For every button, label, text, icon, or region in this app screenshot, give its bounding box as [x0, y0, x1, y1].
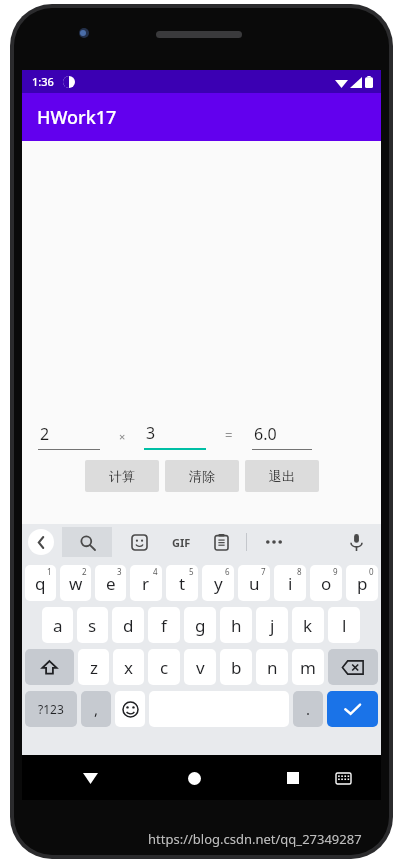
button[interactable]: . — [293, 691, 323, 727]
button[interactable]: 3 — [144, 422, 206, 450]
button[interactable]: Voice input — [343, 529, 369, 555]
staticText: × — [119, 429, 126, 444]
staticText: https://blog.csdn.net/qq_27349287 — [148, 830, 362, 848]
staticText: k — [303, 614, 313, 637]
button[interactable]: Enter — [327, 691, 378, 727]
button[interactable]: Back — [75, 763, 105, 793]
button[interactable]: Search — [62, 527, 112, 557]
button[interactable]: s — [77, 607, 108, 643]
staticText: c — [160, 656, 169, 679]
staticText: v — [196, 656, 205, 679]
button[interactable]: Backspace — [328, 649, 378, 685]
staticText: 退出 — [269, 468, 295, 484]
staticText: 9 — [333, 566, 338, 577]
staticText: j — [270, 614, 275, 637]
button[interactable]: z — [78, 649, 109, 685]
button[interactable]: f — [148, 607, 180, 643]
button[interactable]: ?123 — [25, 691, 77, 727]
staticText: q — [35, 572, 46, 595]
button[interactable]: h — [220, 607, 252, 643]
button[interactable]: n — [256, 649, 288, 685]
staticText: r — [142, 572, 150, 595]
staticText: z — [90, 656, 98, 679]
staticText: i — [288, 572, 293, 595]
staticText: m — [300, 656, 316, 679]
staticText: 1 — [47, 566, 52, 577]
staticText: u — [249, 572, 260, 595]
staticText: ?123 — [38, 701, 64, 717]
staticText: 0 — [369, 566, 374, 577]
button[interactable]: a — [42, 607, 73, 643]
staticText: 2 — [82, 566, 87, 577]
staticText: l — [342, 614, 347, 637]
button[interactable]: g — [184, 607, 216, 643]
button[interactable]: c — [148, 649, 180, 685]
staticText: 3 — [146, 422, 156, 444]
staticText: h — [231, 614, 242, 637]
button[interactable]: 6.0 — [252, 423, 312, 450]
button[interactable]: 退出 — [245, 460, 319, 492]
staticText: 1:36 — [32, 74, 54, 89]
button[interactable]: y — [202, 565, 234, 601]
button[interactable]: GIF — [166, 529, 196, 555]
button[interactable]: q — [25, 565, 56, 601]
staticText: = — [225, 426, 233, 444]
button[interactable]: t — [166, 565, 198, 601]
staticText: 2 — [40, 423, 50, 445]
button[interactable]: u — [238, 565, 270, 601]
button[interactable]: i — [274, 565, 306, 601]
button[interactable]: d — [112, 607, 144, 643]
button[interactable]: j — [256, 607, 288, 643]
button[interactable]: 清除 — [165, 460, 239, 492]
staticText: a — [53, 614, 63, 637]
button[interactable]: 计算 — [85, 460, 159, 492]
button[interactable]: Shift — [25, 649, 74, 685]
staticText: 3 — [117, 566, 122, 577]
button[interactable]: Recent apps — [278, 763, 308, 793]
button[interactable]: e — [95, 565, 126, 601]
staticText: t — [179, 572, 186, 595]
button[interactable]: r — [130, 565, 162, 601]
button[interactable]: Home — [179, 763, 209, 793]
staticText: . — [306, 699, 311, 719]
button[interactable]: More options — [261, 529, 287, 555]
staticText: 6.0 — [254, 423, 277, 445]
button[interactable]: l — [328, 607, 360, 643]
staticText: GIF — [172, 535, 191, 550]
staticText: p — [357, 572, 368, 595]
staticText: g — [195, 614, 206, 637]
button[interactable]: p — [346, 565, 378, 601]
staticText: 计算 — [109, 468, 135, 484]
staticText: 7 — [261, 566, 266, 577]
staticText: n — [267, 656, 278, 679]
staticText: , — [94, 699, 99, 719]
button[interactable]: k — [292, 607, 324, 643]
button[interactable]: Stickers — [126, 529, 152, 555]
button[interactable]: , — [81, 691, 111, 727]
button[interactable]: Back — [28, 529, 54, 555]
button[interactable]: Switch keyboard — [330, 765, 356, 791]
button[interactable]: v — [184, 649, 216, 685]
staticText: b — [231, 656, 242, 679]
staticText: 6 — [225, 566, 230, 577]
staticText: e — [106, 572, 116, 595]
staticText: 清除 — [189, 468, 215, 484]
staticText: HWork17 — [37, 105, 117, 130]
button[interactable]: Emoji — [115, 691, 145, 727]
button[interactable]: 2 — [38, 423, 100, 450]
staticText: x — [124, 656, 133, 679]
staticText: o — [321, 572, 332, 595]
staticText: 5 — [189, 566, 194, 577]
staticText: w — [69, 572, 83, 595]
button[interactable]: o — [310, 565, 342, 601]
button[interactable]: w — [60, 565, 91, 601]
staticText: y — [214, 572, 223, 595]
staticText: 4 — [153, 566, 158, 577]
staticText: 8 — [297, 566, 302, 577]
button[interactable]: m — [292, 649, 324, 685]
button[interactable]: x — [113, 649, 144, 685]
button[interactable]: b — [220, 649, 252, 685]
button[interactable]: Clipboard — [208, 529, 234, 555]
staticText: d — [123, 614, 134, 637]
